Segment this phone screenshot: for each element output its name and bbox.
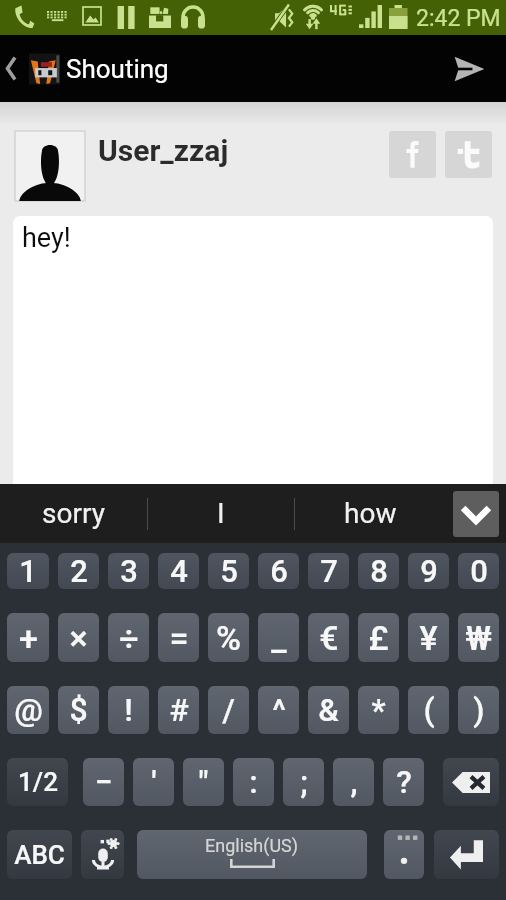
button[interactable]: Backspace (443, 758, 499, 806)
staticText: User_zzaj (98, 133, 229, 168)
button[interactable]: Voice input (81, 830, 124, 879)
staticText: € (319, 618, 339, 658)
staticText: 1 (19, 553, 37, 589)
staticText: 6 (270, 553, 288, 589)
staticText: ^ (272, 691, 286, 729)
staticText: hey! (22, 222, 71, 254)
button[interactable]: Share on Facebook (389, 131, 436, 178)
staticText: ( (423, 691, 435, 729)
staticText: 1/2 (18, 767, 58, 797)
button[interactable]: 6 (258, 553, 299, 589)
button[interactable]: − (83, 758, 124, 806)
staticText: 0 (470, 553, 488, 589)
button[interactable]: Share on Twitter (445, 131, 492, 178)
button[interactable]: 7 (308, 553, 349, 589)
staticText: £ (368, 618, 389, 658)
staticText: _ (271, 618, 287, 658)
button[interactable]: 1/2 (7, 758, 68, 806)
staticText: ₩ (465, 618, 492, 658)
staticText: ; (300, 763, 308, 801)
staticText: 9 (420, 553, 438, 589)
staticText: 8 (370, 553, 388, 589)
staticText: / (222, 691, 235, 729)
staticText: ABC (14, 840, 65, 870)
staticText: × (69, 618, 88, 658)
staticText: 7 (320, 553, 338, 589)
staticText: % (216, 618, 241, 658)
staticText: sorry (42, 497, 105, 530)
button[interactable]: Hide keyboard (446, 484, 506, 543)
staticText: English(US) (205, 835, 299, 856)
button[interactable]: ( (408, 686, 449, 734)
button[interactable]: sorry (0, 484, 147, 543)
button[interactable]: Space (137, 830, 367, 879)
staticText: @ (14, 691, 43, 729)
button[interactable]: hey! (13, 216, 493, 484)
button[interactable]: 3 (108, 553, 149, 589)
button[interactable]: / (208, 686, 249, 734)
button[interactable]: ^ (258, 686, 299, 734)
staticText: * (371, 691, 386, 729)
button[interactable]: ! (108, 686, 149, 734)
staticText: ! (124, 691, 133, 729)
button[interactable]: 8 (358, 553, 399, 589)
staticText: + (19, 618, 38, 658)
staticText: how (344, 497, 397, 530)
button[interactable]: Back (0, 35, 66, 102)
staticText: $ (69, 691, 88, 729)
button[interactable]: I (148, 484, 294, 543)
staticText: ÷ (119, 618, 139, 658)
button[interactable]: 4 (158, 553, 199, 589)
button[interactable]: * (358, 686, 399, 734)
staticText: : (249, 763, 258, 801)
button[interactable]: ¥ (408, 613, 449, 662)
staticText: # (169, 691, 189, 729)
button[interactable]: € (308, 613, 349, 662)
button[interactable]: ) (458, 686, 499, 734)
button[interactable]: # (158, 686, 199, 734)
button[interactable]: : (233, 758, 274, 806)
staticText: ¥ (419, 618, 438, 658)
staticText: I (217, 497, 225, 530)
staticText: 4 (170, 553, 188, 589)
button[interactable]: " (183, 758, 224, 806)
button[interactable]: Period and symbols (384, 830, 424, 879)
button[interactable]: Enter (434, 830, 499, 879)
staticText: = (169, 618, 189, 658)
button[interactable]: $ (58, 686, 99, 734)
button[interactable]: 0 (458, 553, 499, 589)
staticText: ) (473, 691, 485, 729)
staticText: 2:42 PM (416, 5, 501, 32)
button[interactable]: 2 (58, 553, 99, 589)
button[interactable]: _ (258, 613, 299, 662)
button[interactable]: £ (358, 613, 399, 662)
button[interactable]: , (333, 758, 374, 806)
button[interactable]: = (158, 613, 199, 662)
button[interactable]: ABC (7, 830, 72, 879)
button[interactable]: ÷ (108, 613, 149, 662)
button[interactable]: ; (283, 758, 324, 806)
staticText: − (94, 763, 113, 801)
button[interactable]: ? (383, 758, 424, 806)
button[interactable]: × (58, 613, 99, 662)
button[interactable]: 9 (408, 553, 449, 589)
staticText: 5 (220, 553, 238, 589)
button[interactable]: Send (430, 35, 506, 102)
button[interactable]: @ (7, 686, 49, 734)
button[interactable]: ' (133, 758, 174, 806)
button[interactable]: + (7, 613, 49, 662)
staticText: Shouting (66, 54, 169, 84)
button[interactable]: how (295, 484, 446, 543)
staticText: " (198, 763, 209, 801)
staticText: 2 (70, 553, 88, 589)
staticText: ? (396, 763, 412, 801)
button[interactable]: 1 (7, 553, 49, 589)
button[interactable]: & (308, 686, 349, 734)
staticText: , (350, 763, 358, 801)
button[interactable]: 5 (208, 553, 249, 589)
button[interactable]: % (208, 613, 249, 662)
staticText: 3 (120, 553, 138, 589)
staticText: ' (151, 763, 157, 801)
staticText: & (318, 691, 339, 729)
button[interactable]: ₩ (458, 613, 499, 662)
